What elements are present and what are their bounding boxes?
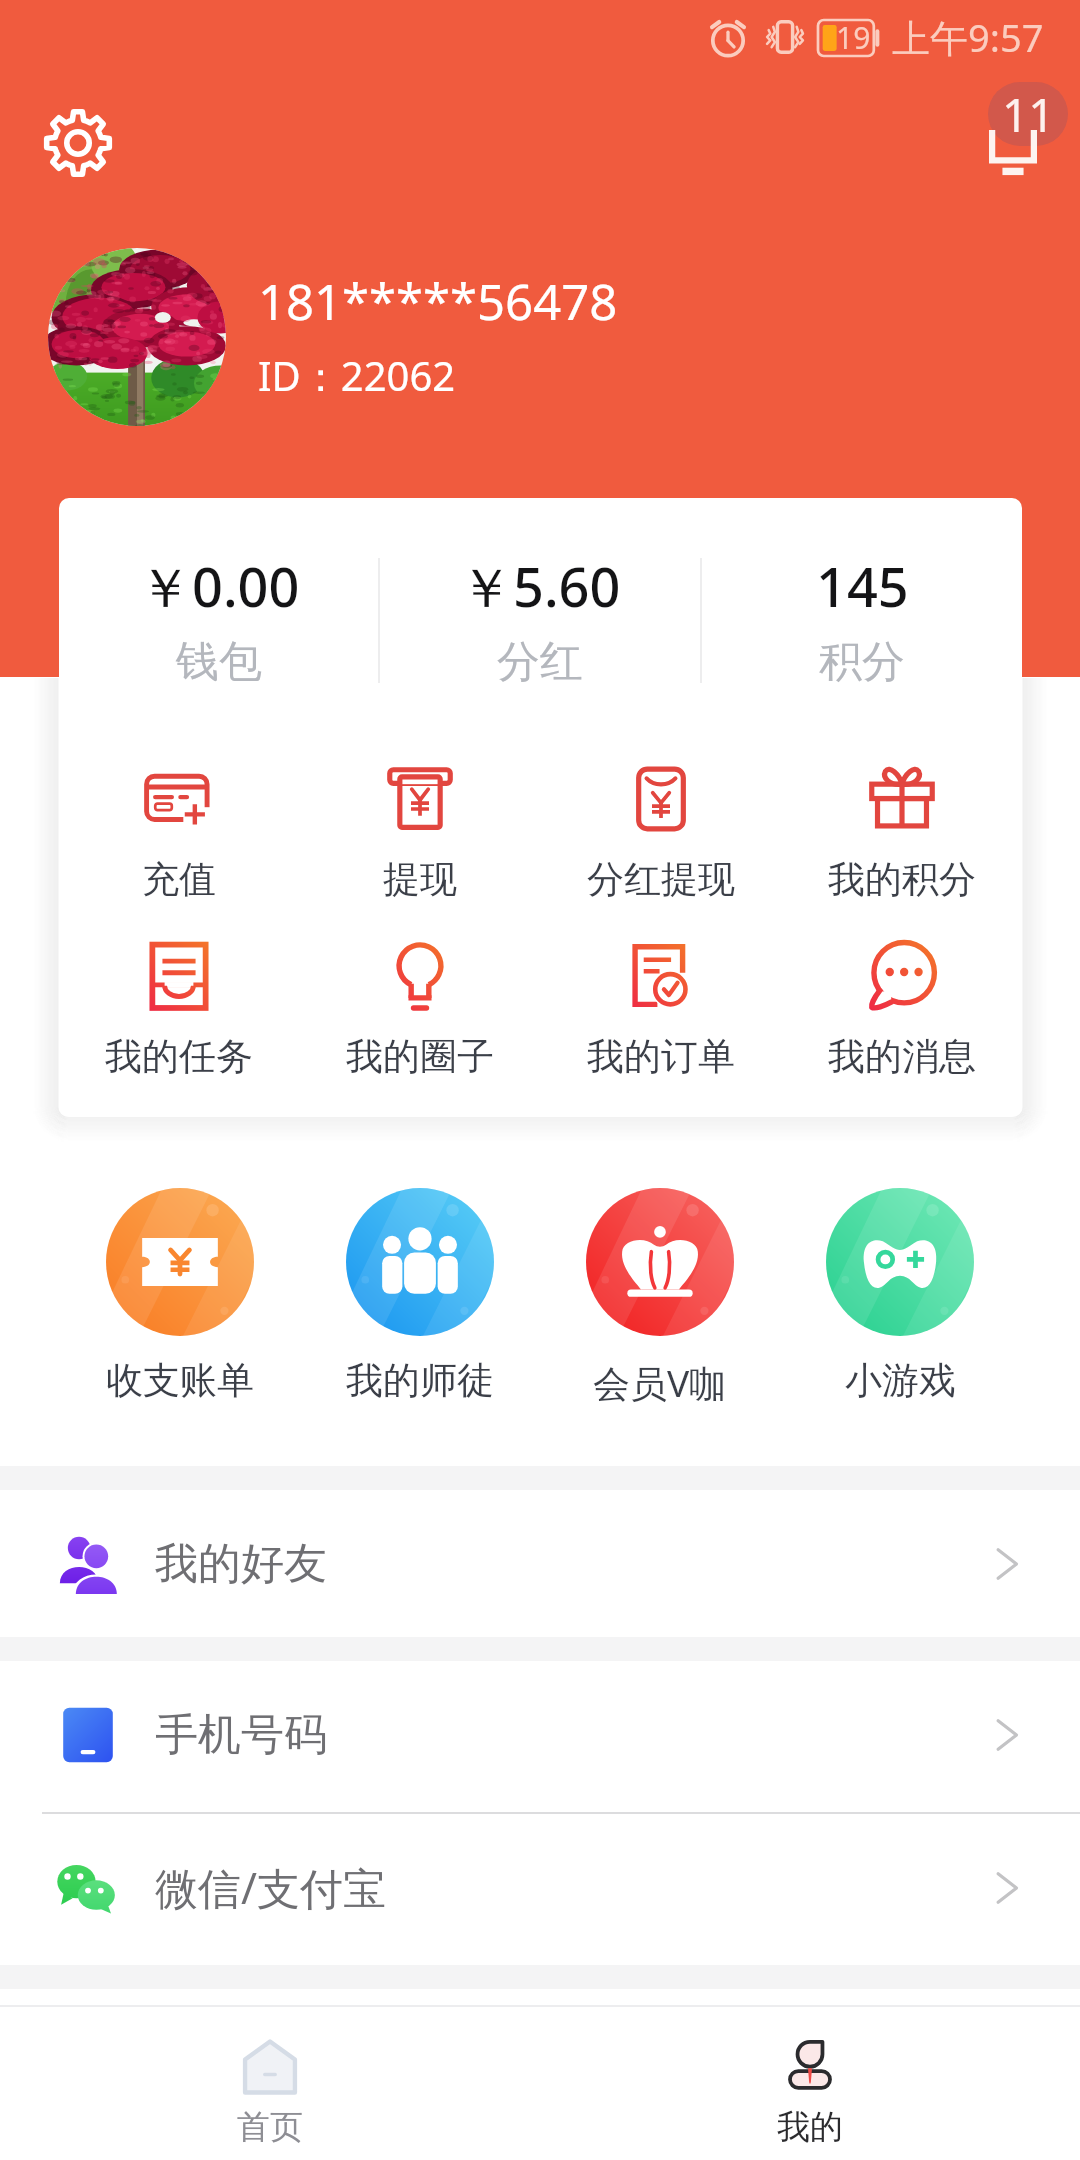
button[interactable]: 我的消息 xyxy=(781,941,1022,1080)
staticText: ￥5.60 xyxy=(459,549,621,623)
staticText: 收支账单 xyxy=(106,1357,254,1404)
staticText: 19 xyxy=(836,17,871,58)
staticText: 11 xyxy=(1002,83,1055,146)
staticText: 我的好友 xyxy=(155,1537,327,1591)
staticText: 微信/支付宝 xyxy=(155,1858,386,1917)
staticText: 我的圈子 xyxy=(346,1033,494,1080)
staticText: 我的消息 xyxy=(828,1033,976,1080)
staticText: 145 xyxy=(816,549,909,623)
staticText: 手机号码 xyxy=(155,1708,327,1762)
staticText: 我的积分 xyxy=(828,856,976,903)
staticText: 首页 xyxy=(237,2106,303,2148)
staticText: 钱包 xyxy=(176,635,262,689)
button[interactable]: 我的任务 xyxy=(59,941,299,1080)
staticText: 我的任务 xyxy=(105,1033,253,1080)
button[interactable]: 145 xyxy=(702,498,1022,698)
button[interactable]: Settings xyxy=(30,95,126,191)
staticText: 会员V咖 xyxy=(593,1357,727,1408)
button[interactable]: ￥5.60 xyxy=(380,498,700,698)
button[interactable]: 我的 xyxy=(540,2025,1080,2160)
button[interactable]: 我的订单 xyxy=(540,941,781,1080)
staticText: 我的师徒 xyxy=(346,1357,494,1404)
button[interactable]: 我的好友 xyxy=(0,1490,1080,1637)
staticText: 充值 xyxy=(142,856,216,903)
button[interactable]: 会员V咖 xyxy=(540,1188,780,1408)
staticText: 我的 xyxy=(777,2106,843,2148)
staticText: ￥0.00 xyxy=(138,549,300,623)
button[interactable]: 微信/支付宝 xyxy=(0,1814,1080,1961)
button[interactable]: Messages, 11 unread xyxy=(960,78,1070,198)
button[interactable]: 我的圈子 xyxy=(299,941,540,1080)
staticText: 分红 xyxy=(497,635,583,689)
button[interactable]: 我的师徒 xyxy=(300,1188,540,1404)
staticText: 181*****56478 xyxy=(258,268,618,335)
button[interactable]: 首页 xyxy=(0,2025,540,2160)
staticText: 分红提现 xyxy=(587,856,735,903)
button[interactable]: 分红提现 xyxy=(540,764,781,903)
button[interactable]: 充值 xyxy=(59,764,299,903)
button[interactable]: 收支账单 xyxy=(60,1188,300,1404)
staticText: 小游戏 xyxy=(845,1357,956,1404)
button[interactable]: 手机号码 xyxy=(0,1661,1080,1808)
staticText: 积分 xyxy=(819,635,905,689)
staticText: 提现 xyxy=(383,856,457,903)
button[interactable]: Profile photo xyxy=(48,248,226,426)
button[interactable]: 我的积分 xyxy=(781,764,1022,903)
staticText: ID：22062 xyxy=(258,348,456,403)
staticText: 上午9:57 xyxy=(892,11,1044,63)
button[interactable]: 小游戏 xyxy=(780,1188,1020,1404)
button[interactable]: 提现 xyxy=(299,764,540,903)
staticText: 我的订单 xyxy=(587,1033,735,1080)
button[interactable]: ￥0.00 xyxy=(59,498,378,698)
